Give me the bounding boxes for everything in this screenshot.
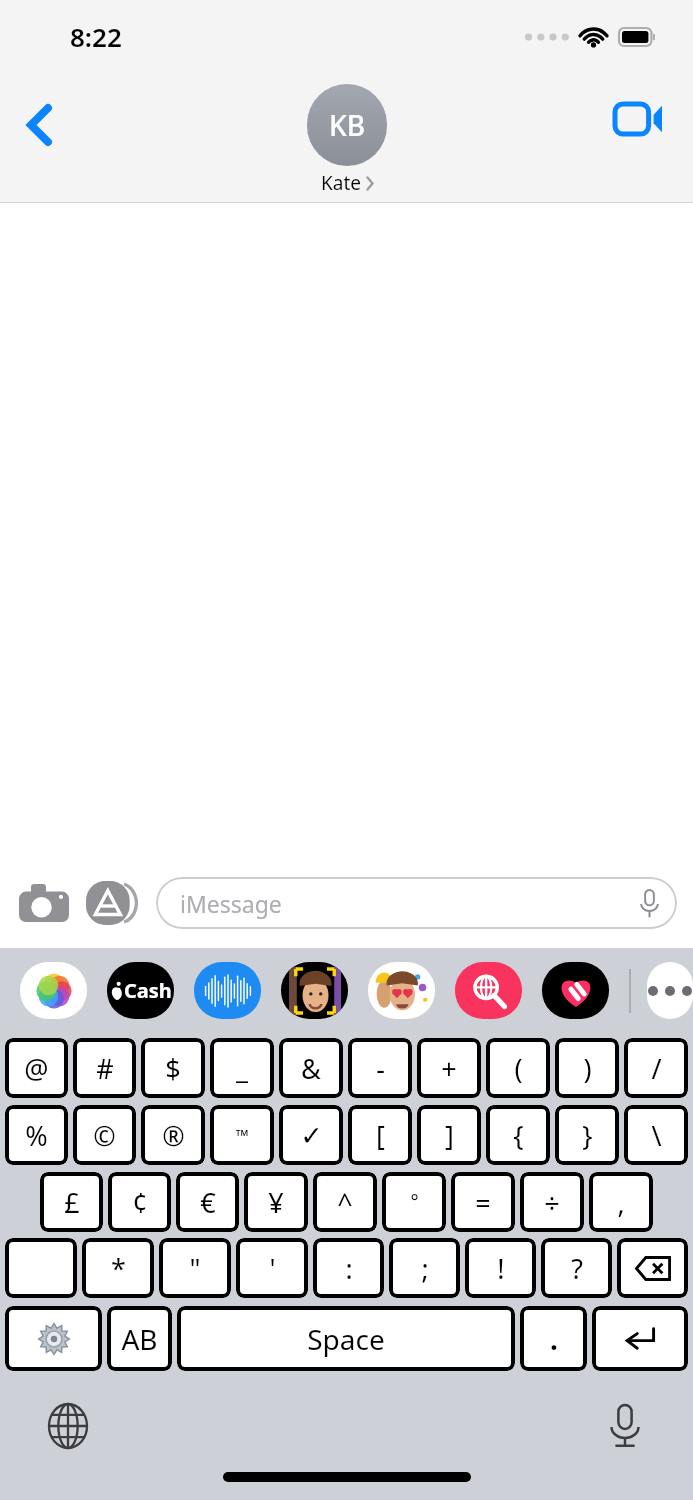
button[interactable]: / (624, 1038, 688, 1098)
button[interactable]: More apps (647, 962, 693, 1019)
button[interactable]: * (82, 1238, 154, 1298)
button[interactable]: ¢ (108, 1172, 171, 1232)
staticText: ! (497, 1250, 505, 1287)
button[interactable]: iMessage apps (86, 875, 142, 931)
button[interactable]: © (73, 1105, 136, 1165)
button[interactable]: [ (348, 1105, 412, 1165)
button[interactable]: ÷ (520, 1172, 584, 1232)
staticText: = (475, 1184, 491, 1221)
staticText: ™ (235, 1124, 249, 1147)
staticText: - (376, 1050, 385, 1087)
button[interactable]: Shift (5, 1238, 77, 1298)
button[interactable]: & (279, 1038, 343, 1098)
button[interactable]: KB (307, 84, 387, 196)
staticText: ° (410, 1189, 419, 1215)
button[interactable]: : (313, 1238, 384, 1298)
staticText: Kate (321, 170, 361, 196)
button[interactable]: _ (210, 1038, 274, 1098)
button[interactable]: ° (382, 1172, 446, 1232)
button[interactable]: Fitness (542, 962, 609, 1019)
staticText: " (189, 1250, 201, 1287)
staticText: ÷ (544, 1184, 560, 1221)
button[interactable]: £ (40, 1172, 103, 1232)
staticText: ¥ (268, 1184, 284, 1221)
button[interactable]: Photos (20, 962, 87, 1019)
button[interactable]: Return (592, 1306, 688, 1371)
button[interactable]: Camera (16, 875, 72, 931)
button[interactable]: ( (486, 1038, 550, 1098)
button[interactable]: Memoji (281, 962, 348, 1019)
button[interactable]: ™ (210, 1105, 274, 1165)
staticText: ) (583, 1050, 592, 1087)
button[interactable]: AB (107, 1306, 172, 1371)
button[interactable]: , (589, 1172, 653, 1232)
staticText: : (345, 1250, 353, 1287)
button[interactable]: " (159, 1238, 231, 1298)
button[interactable]: - (348, 1038, 412, 1098)
button[interactable]: Images (455, 962, 522, 1019)
staticText: { (513, 1117, 524, 1154)
button[interactable]: Memoji stickers (368, 962, 435, 1019)
staticText: © (93, 1117, 116, 1154)
staticText: \ (651, 1117, 662, 1154)
staticText: , (617, 1184, 625, 1221)
button[interactable]: } (555, 1105, 619, 1165)
staticText: } (582, 1117, 593, 1154)
staticText: ✓ (300, 1120, 323, 1151)
button[interactable]: ✓ (279, 1105, 343, 1165)
staticText: @ (24, 1050, 49, 1087)
staticText: Space (307, 1320, 385, 1358)
button[interactable]: . (520, 1306, 587, 1371)
staticText: Cash (124, 977, 172, 1004)
staticText: KB (329, 106, 366, 144)
staticText: AB (121, 1320, 158, 1358)
button[interactable]: Audio message (194, 962, 261, 1019)
staticText: ¢ (132, 1184, 148, 1221)
button[interactable]: Delete (617, 1238, 688, 1298)
button[interactable]: ¥ (244, 1172, 308, 1232)
button[interactable]: Space (177, 1306, 515, 1371)
staticText: _ (236, 1050, 248, 1087)
button[interactable]: Dictation (595, 1396, 655, 1456)
staticText: ^ (337, 1184, 353, 1221)
button[interactable]: % (5, 1105, 68, 1165)
staticText: + (441, 1050, 457, 1087)
staticText: ? (571, 1250, 583, 1287)
staticText: / (651, 1050, 662, 1087)
button[interactable]: Keyboard settings (5, 1306, 102, 1371)
staticText: # (96, 1050, 114, 1087)
button[interactable]: Apple Cash (107, 962, 174, 1019)
staticText: $ (165, 1050, 181, 1087)
staticText: . (550, 1320, 558, 1358)
button[interactable]: ® (141, 1105, 205, 1165)
staticText: € (200, 1184, 216, 1221)
button[interactable]: $ (141, 1038, 205, 1098)
button[interactable]: ) (555, 1038, 619, 1098)
button[interactable]: \ (624, 1105, 688, 1165)
button[interactable]: = (451, 1172, 515, 1232)
button[interactable]: ^ (313, 1172, 377, 1232)
staticText: £ (64, 1184, 80, 1221)
staticText: * (111, 1250, 126, 1287)
button[interactable]: FaceTime video call (609, 89, 669, 149)
button[interactable]: ' (236, 1238, 308, 1298)
button[interactable]: Back (10, 96, 68, 154)
button[interactable]: # (73, 1038, 136, 1098)
button[interactable]: @ (5, 1038, 68, 1098)
button[interactable]: { (486, 1105, 550, 1165)
button[interactable]: + (417, 1038, 481, 1098)
button[interactable]: ] (417, 1105, 481, 1165)
staticText: ® (162, 1117, 185, 1154)
button[interactable]: ; (389, 1238, 460, 1298)
staticText: ( (514, 1050, 523, 1087)
staticText: iMessage (180, 888, 282, 919)
button[interactable]: Change keyboard (38, 1396, 98, 1456)
staticText: 8:22 (70, 19, 122, 54)
button[interactable]: € (176, 1172, 239, 1232)
staticText: ; (421, 1250, 429, 1287)
button[interactable]: iMessage (156, 877, 677, 929)
staticText: [ (376, 1117, 385, 1154)
staticText: % (25, 1117, 48, 1154)
button[interactable]: ! (465, 1238, 536, 1298)
button[interactable]: ? (541, 1238, 612, 1298)
